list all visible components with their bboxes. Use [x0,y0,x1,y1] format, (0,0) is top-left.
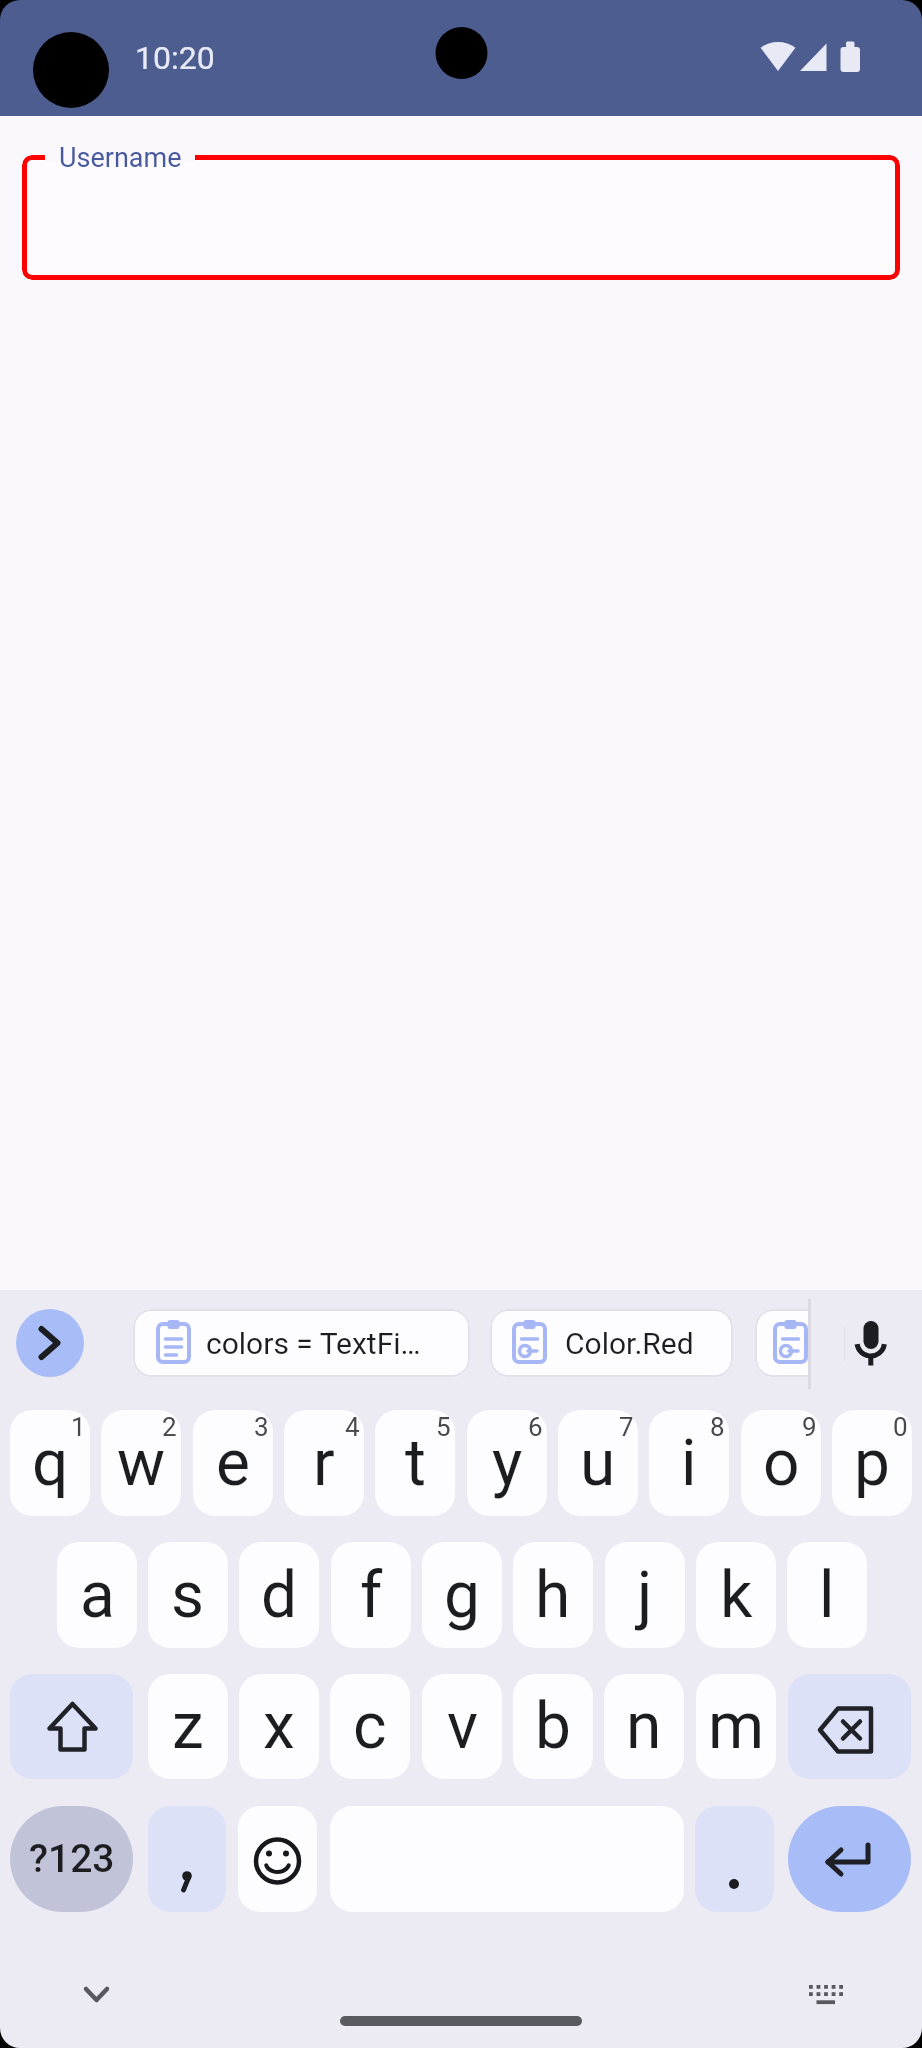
staticText: colors = TextFi… [206,1326,421,1361]
button[interactable]: l [787,1542,867,1648]
staticText: s [171,1558,205,1633]
button[interactable] [10,1674,133,1779]
button[interactable]: d [239,1542,319,1648]
button[interactable]: f [331,1542,411,1648]
button[interactable]: ?123 [10,1806,133,1912]
staticText: Username [59,142,182,174]
staticText: u [580,1426,616,1501]
staticText: m [708,1689,765,1764]
button[interactable]: r [284,1410,364,1516]
button[interactable] [788,1806,911,1912]
staticText: c [353,1689,387,1764]
staticText: 4 [345,1412,360,1442]
staticText: 6 [528,1412,543,1442]
button[interactable]: k [696,1542,776,1648]
button[interactable] [73,1972,121,2014]
staticText: z [172,1689,204,1764]
staticText: e [216,1426,250,1501]
button[interactable]: g [422,1542,502,1648]
staticText: i [681,1426,697,1501]
button[interactable]: Color.Red [490,1309,733,1377]
staticText: h [535,1558,571,1633]
staticText: w [117,1426,166,1501]
button[interactable]: v [422,1674,502,1779]
button[interactable] [840,1315,896,1375]
button[interactable]: w [101,1410,181,1516]
staticText: t [405,1426,426,1501]
staticText: v [447,1689,478,1764]
button[interactable]: s [148,1542,228,1648]
button[interactable]: e [193,1410,273,1516]
button[interactable]: t [375,1410,455,1516]
staticText: 1 [71,1412,86,1442]
button[interactable]: a [57,1542,137,1648]
staticText: f [360,1558,383,1633]
button[interactable]: c [330,1674,410,1779]
staticText: o [763,1426,800,1501]
staticText: ?123 [29,1836,115,1882]
staticText: g [444,1558,480,1633]
button[interactable]: colors = TextFi… [133,1309,470,1377]
staticText: 10:20 [135,39,215,77]
staticText: 7 [619,1412,634,1442]
button[interactable]: j [605,1542,685,1648]
staticText: 2 [162,1412,177,1442]
button[interactable] [238,1806,317,1912]
button[interactable] [22,155,900,280]
staticText: b [535,1689,571,1764]
button[interactable]: p [832,1410,912,1516]
button[interactable]: x [239,1674,319,1779]
button[interactable] [16,1309,84,1377]
staticText: n [626,1689,662,1764]
button[interactable]: y [467,1410,547,1516]
button[interactable] [695,1806,774,1912]
staticText: x [263,1689,295,1764]
button[interactable] [788,1674,911,1779]
staticText: j [637,1558,653,1633]
button[interactable]: m [696,1674,776,1779]
staticText: p [854,1426,890,1501]
staticText: Color.Red [565,1326,694,1361]
staticText: k [720,1558,753,1633]
staticText: 3 [254,1412,269,1442]
button[interactable]: u [558,1410,638,1516]
staticText: q [32,1426,69,1501]
staticText: 8 [710,1412,725,1442]
button[interactable] [148,1806,226,1912]
button[interactable]: z [148,1674,228,1779]
button[interactable]: b [513,1674,593,1779]
button[interactable]: h [513,1542,593,1648]
staticText: 5 [436,1412,451,1442]
button[interactable]: q [10,1410,90,1516]
button[interactable]: n [604,1674,684,1779]
staticText: a [80,1558,115,1633]
staticText: 9 [802,1412,817,1442]
button[interactable] [798,1975,850,2017]
button[interactable]: i [649,1410,729,1516]
staticText: r [313,1426,335,1501]
staticText: 0 [893,1412,908,1442]
staticText: y [492,1426,523,1501]
staticText: d [261,1558,298,1633]
staticText: l [819,1558,835,1633]
button[interactable]: o [741,1410,821,1516]
